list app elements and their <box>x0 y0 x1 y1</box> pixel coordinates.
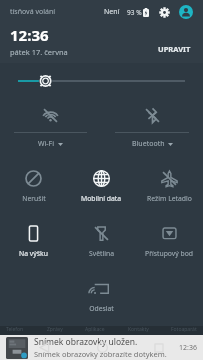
staticText: Mobilní data <box>81 194 121 203</box>
staticText: Odeslat <box>89 304 114 313</box>
button[interactable]: Home <box>89 335 115 360</box>
button[interactable]: Mobilní data <box>67 161 135 203</box>
button[interactable]: Nerušit <box>0 161 67 203</box>
staticText: Světlina <box>89 249 114 258</box>
button[interactable]: User <box>177 4 195 20</box>
staticText: Na výšku <box>19 249 48 258</box>
button[interactable]: Recents <box>146 335 172 360</box>
button[interactable]: Odeslat <box>67 271 135 313</box>
staticText: UPRAVIT <box>158 44 191 54</box>
button[interactable]: Snímek obrazovky uložen. <box>0 335 203 360</box>
button[interactable]: Režim Letadlo <box>135 161 203 203</box>
button[interactable]: Na výšku <box>0 216 67 258</box>
button[interactable]: Světlina <box>67 216 135 258</box>
staticText: Nerušit <box>22 194 46 203</box>
staticText: Zprávy <box>47 326 63 333</box>
button[interactable]: Bluetooth <box>101 99 203 149</box>
staticText: pátek 17. června <box>10 47 68 57</box>
button[interactable]: Back <box>31 335 57 360</box>
staticText: Režim Letadlo <box>147 194 192 203</box>
staticText: Telefon <box>6 326 24 333</box>
button[interactable]: Wi-Fi <box>0 99 101 149</box>
button[interactable]: UPRAVIT <box>154 41 195 57</box>
staticText: Wi-Fi <box>38 139 55 149</box>
staticText: Aplikace <box>85 326 105 333</box>
staticText: 12:36 <box>10 25 49 45</box>
staticText: Přístupový bod <box>145 249 193 258</box>
staticText: 12:36 <box>179 343 197 353</box>
button[interactable]: Brightness <box>0 63 203 99</box>
button[interactable]: Přístupový bod <box>135 216 203 258</box>
staticText: Fotoaparát <box>171 326 197 333</box>
staticText: 93 % <box>127 8 142 17</box>
button[interactable]: Settings <box>156 4 172 20</box>
staticText: Kontakty <box>128 326 149 333</box>
staticText: Bluetooth <box>132 139 165 149</box>
staticText: tísňová volání <box>10 7 56 17</box>
staticText: Snímek obrazovky uložen. <box>34 336 138 348</box>
staticText: Není <box>104 7 120 17</box>
staticText: Snímek obrazovky zobrazíte dotykem. <box>34 349 167 359</box>
